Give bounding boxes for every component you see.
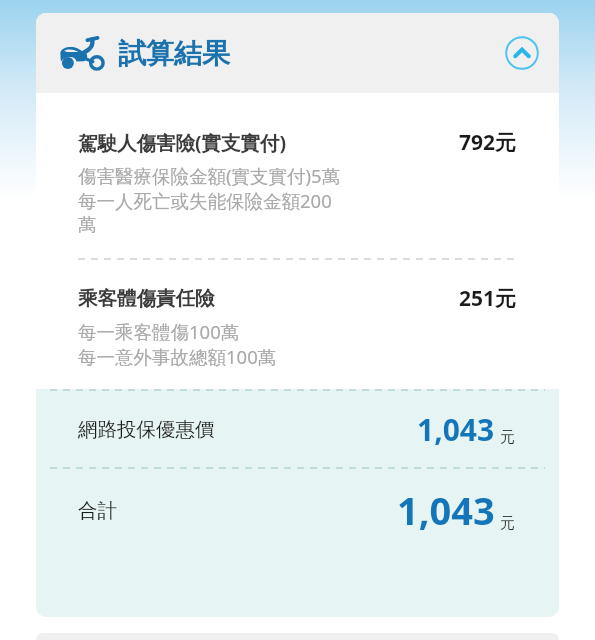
staticText: 傷害醫療保險金額(實支實付)5萬 bbox=[78, 163, 341, 188]
staticText: 萬 bbox=[78, 213, 97, 236]
staticText: 駕駛人傷害險(實支實付) bbox=[78, 129, 459, 156]
staticText: 元 bbox=[500, 514, 515, 533]
staticText: 乘客體傷責任險 bbox=[78, 286, 459, 311]
button[interactable]: 駕駛人傷害險(實支實付) bbox=[78, 128, 517, 236]
staticText: 每一乘客體傷100萬 bbox=[78, 319, 240, 344]
button[interactable]: Collapse bbox=[503, 34, 541, 72]
button[interactable]: 網路投保優惠價 bbox=[36, 391, 559, 467]
staticText: 251元 bbox=[459, 284, 517, 313]
staticText: 網路投保優惠價 bbox=[78, 417, 417, 442]
staticText: 每一人死亡或失能保險金額200 bbox=[78, 188, 332, 213]
staticText: 每一意外事故總額100萬 bbox=[78, 344, 277, 369]
staticText: 1,043 bbox=[397, 484, 495, 536]
button[interactable]: 試算結果 bbox=[36, 13, 559, 93]
staticText: 試算結果 bbox=[118, 36, 503, 71]
button[interactable]: 乘客體傷責任險 bbox=[78, 284, 517, 369]
staticText: 合計 bbox=[78, 498, 397, 523]
button[interactable]: 合計 bbox=[36, 469, 559, 551]
staticText: 792元 bbox=[459, 128, 517, 157]
staticText: 元 bbox=[500, 428, 515, 447]
staticText: 1,043 bbox=[417, 409, 495, 450]
